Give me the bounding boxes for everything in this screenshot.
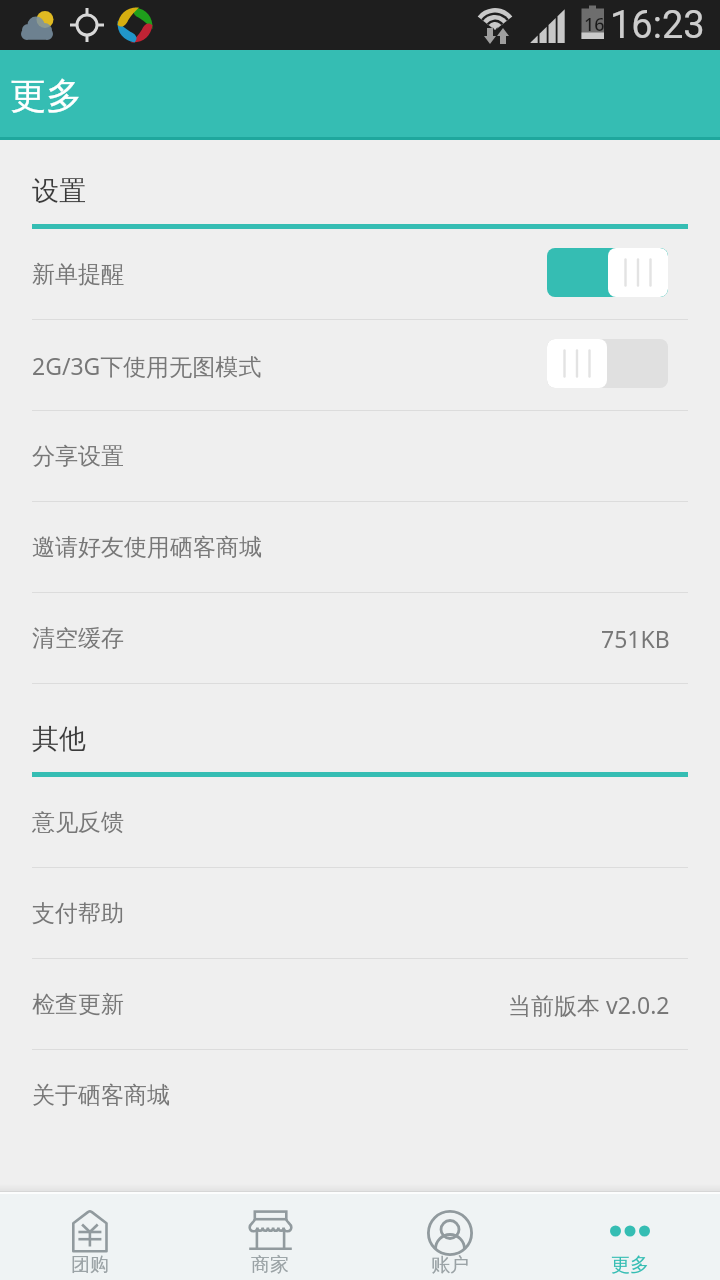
button[interactable]: 邀请好友使用硒客商城 xyxy=(0,502,720,592)
staticText: 分享设置 xyxy=(32,442,124,471)
button[interactable]: 支付帮助 xyxy=(0,868,720,958)
staticText: 设置 xyxy=(32,174,86,208)
button[interactable]: 清空缓存 xyxy=(0,593,720,683)
button[interactable]: 更多 xyxy=(540,1191,720,1280)
staticText: 检查更新 xyxy=(32,990,124,1019)
staticText: 其他 xyxy=(32,722,86,756)
staticText: 新单提醒 xyxy=(32,260,124,289)
staticText: 商家 xyxy=(251,1253,289,1277)
button[interactable]: Toggle on xyxy=(547,248,668,297)
staticText: 账户 xyxy=(431,1253,469,1277)
staticText: 16 xyxy=(584,12,605,37)
staticText: 更多 xyxy=(611,1253,649,1277)
staticText: 751KB xyxy=(601,623,670,654)
staticText: 邀请好友使用硒客商城 xyxy=(32,533,262,562)
staticText: 更多 xyxy=(10,73,82,118)
button[interactable]: 团购 xyxy=(0,1191,180,1280)
button[interactable]: 新单提醒 xyxy=(0,229,720,319)
staticText: 2G/3G下使用无图模式 xyxy=(32,350,262,381)
button[interactable]: 关于硒客商城 xyxy=(0,1050,720,1140)
button[interactable]: 分享设置 xyxy=(0,411,720,501)
button[interactable]: 意见反馈 xyxy=(0,777,720,867)
staticText: 当前版本 v2.0.2 xyxy=(508,989,670,1020)
button[interactable]: 账户 xyxy=(360,1191,540,1280)
button[interactable]: 更多 xyxy=(0,50,720,140)
staticText: 团购 xyxy=(71,1253,109,1277)
staticText: 关于硒客商城 xyxy=(32,1081,170,1110)
button[interactable]: Toggle off xyxy=(547,339,668,388)
staticText: 意见反馈 xyxy=(32,808,124,837)
staticText: 16:23 xyxy=(610,3,705,48)
button[interactable]: 检查更新 xyxy=(0,959,720,1049)
button[interactable]: 2G/3G下使用无图模式 xyxy=(0,320,720,410)
staticText: 支付帮助 xyxy=(32,899,124,928)
staticText: 清空缓存 xyxy=(32,624,124,653)
button[interactable]: 商家 xyxy=(180,1191,360,1280)
